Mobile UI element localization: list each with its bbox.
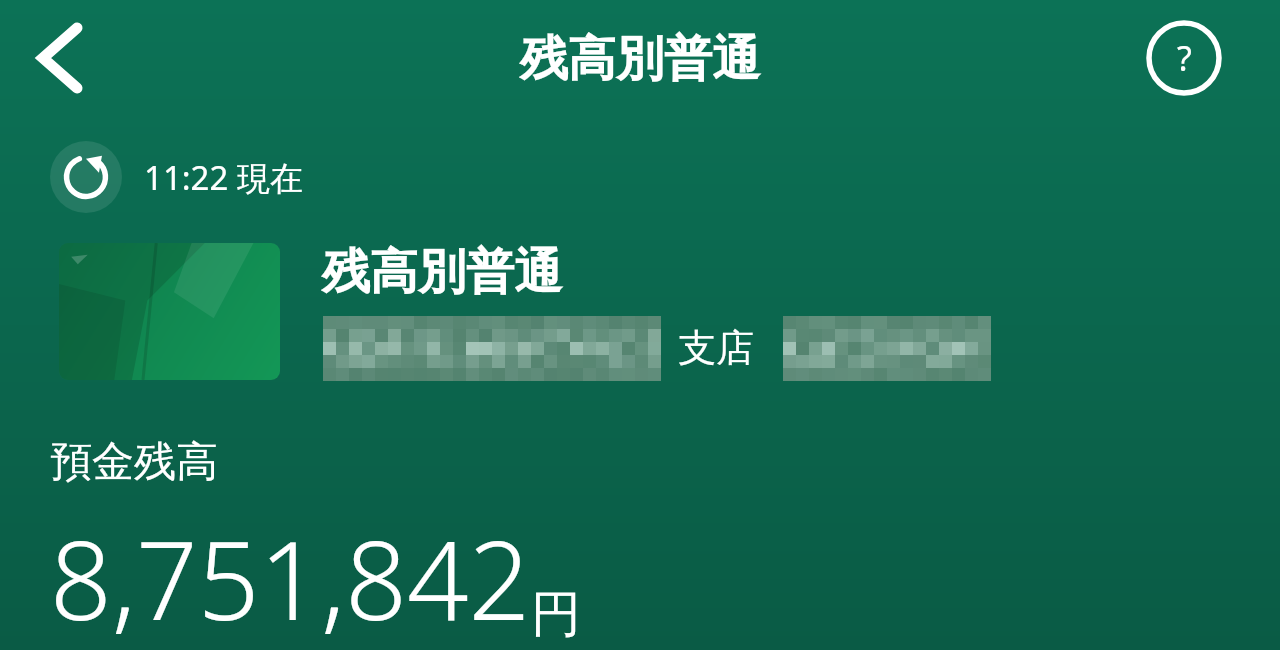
staticText: 残高別普通 [520,29,760,89]
staticText: 残高別普通 [322,242,562,302]
staticText: ? [1177,35,1192,81]
button[interactable]: Help [1144,18,1224,98]
staticText: 円 [531,583,581,646]
button[interactable]: 11:22 現在 [50,141,303,213]
button[interactable] [59,243,280,380]
staticText: 8,751,842 [50,505,531,650]
staticText: 11:22 現在 [144,155,303,200]
staticText: 支店 [678,324,754,372]
staticText: 預金残高 [50,436,218,489]
button[interactable]: 残高別普通 [320,240,1020,380]
button[interactable]: Back [8,8,108,108]
